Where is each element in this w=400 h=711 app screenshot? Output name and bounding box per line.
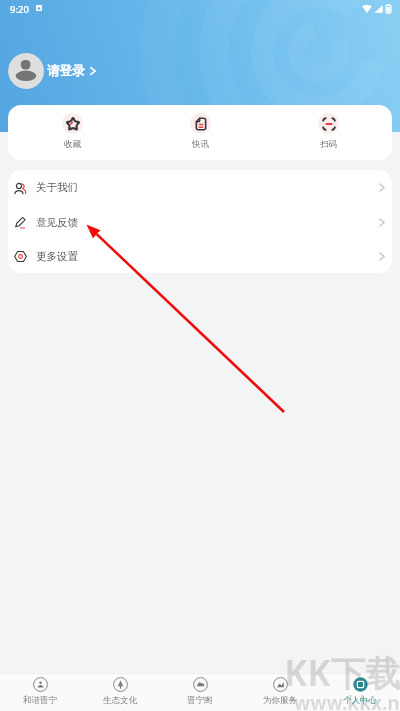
button[interactable]: 晋宁阁 [160, 673, 240, 711]
button[interactable]: 请登录 [8, 53, 102, 89]
staticText: 请登录 [47, 63, 85, 79]
button[interactable]: 意见反馈 [8, 205, 392, 239]
staticText: www.kkx.net [294, 690, 400, 711]
button[interactable]: 快讯 [136, 105, 264, 160]
staticText: 意见反馈 [36, 216, 78, 229]
staticText: 关于我们 [36, 181, 78, 194]
staticText: 为你服务 [263, 695, 297, 706]
button[interactable]: 关于我们 [8, 170, 392, 205]
button[interactable]: 生态文化 [80, 673, 160, 711]
staticText: 生态文化 [103, 695, 137, 706]
staticText: 个人中心 [343, 695, 377, 706]
button[interactable]: 更多设置 [8, 239, 392, 273]
button[interactable]: 个人中心 [320, 673, 400, 711]
staticText: 扫码 [320, 139, 337, 150]
staticText: 9:20 [10, 3, 29, 16]
button[interactable]: 为你服务 [240, 673, 320, 711]
staticText: KK下载 [284, 649, 400, 697]
staticText: 和谐晋宁 [23, 695, 57, 706]
staticText: 收藏 [64, 139, 81, 150]
staticText: 更多设置 [36, 250, 78, 263]
button[interactable]: 收藏 [8, 105, 136, 160]
staticText: 快讯 [192, 139, 209, 150]
button[interactable]: 和谐晋宁 [0, 673, 80, 711]
staticText: 晋宁阁 [187, 695, 213, 706]
button[interactable]: 扫码 [264, 105, 392, 160]
